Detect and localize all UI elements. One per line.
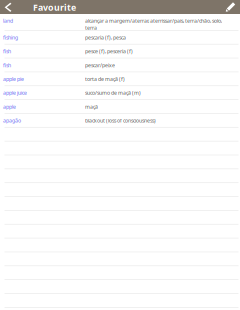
staticText: torta de maçã (f) <box>85 75 125 83</box>
staticText: fish <box>3 48 11 55</box>
button[interactable]: Back <box>0 0 16 14</box>
staticText: pescar/peixe <box>85 62 115 69</box>
staticText: land <box>3 17 13 24</box>
staticText: pesce (f), pesceria (f) <box>85 48 133 55</box>
staticText: blackout (loss of consciousness) <box>85 117 156 124</box>
staticText: suco/sumo de maçã (m) <box>85 89 141 96</box>
button[interactable]: apagão <box>0 114 240 128</box>
staticText: alcançar a margem/aterrar, aterrissar/pa… <box>85 17 222 31</box>
button[interactable]: Compose <box>222 0 238 14</box>
staticText: Favourite <box>33 1 76 13</box>
staticText: pescaria (f), pesca <box>85 34 126 41</box>
button[interactable]: fish <box>0 58 240 72</box>
staticText: maçã <box>85 103 98 110</box>
button[interactable]: fishing <box>0 31 240 44</box>
staticText: apple pie <box>3 75 24 83</box>
button[interactable]: apple juice <box>0 86 240 100</box>
button[interactable]: fish <box>0 44 240 58</box>
staticText: apple <box>3 103 16 110</box>
staticText: fishing <box>3 34 18 41</box>
button[interactable]: apple pie <box>0 72 240 86</box>
button[interactable]: land <box>0 14 240 31</box>
staticText: fish <box>3 62 11 69</box>
staticText: apagão <box>3 117 21 124</box>
button[interactable]: apple <box>0 100 240 114</box>
staticText: apple juice <box>3 89 27 96</box>
